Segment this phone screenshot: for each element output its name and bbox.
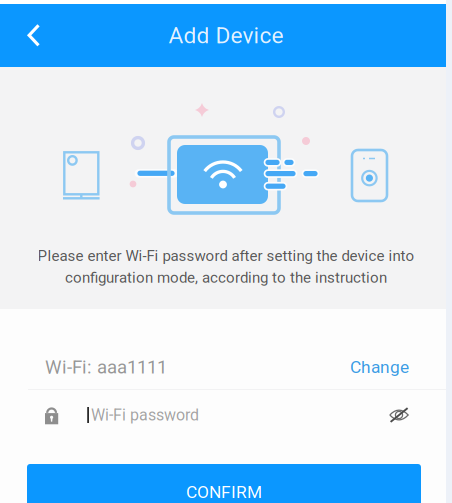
button[interactable]: Back [12,4,56,67]
button[interactable]: Show password [389,407,409,422]
staticText: configuration mode, according to the ins… [65,269,387,286]
staticText: Wi-Fi: aaa1111 [45,356,167,378]
staticText: Add Device [168,22,283,49]
button[interactable]: Change [350,357,409,377]
button[interactable]: CONFIRM [27,464,421,503]
staticText: Please enter Wi-Fi password after settin… [37,247,414,265]
staticText: Wi-Fi password [91,406,199,424]
staticText: CONFIRM [186,482,262,502]
staticText: Change [350,357,409,377]
